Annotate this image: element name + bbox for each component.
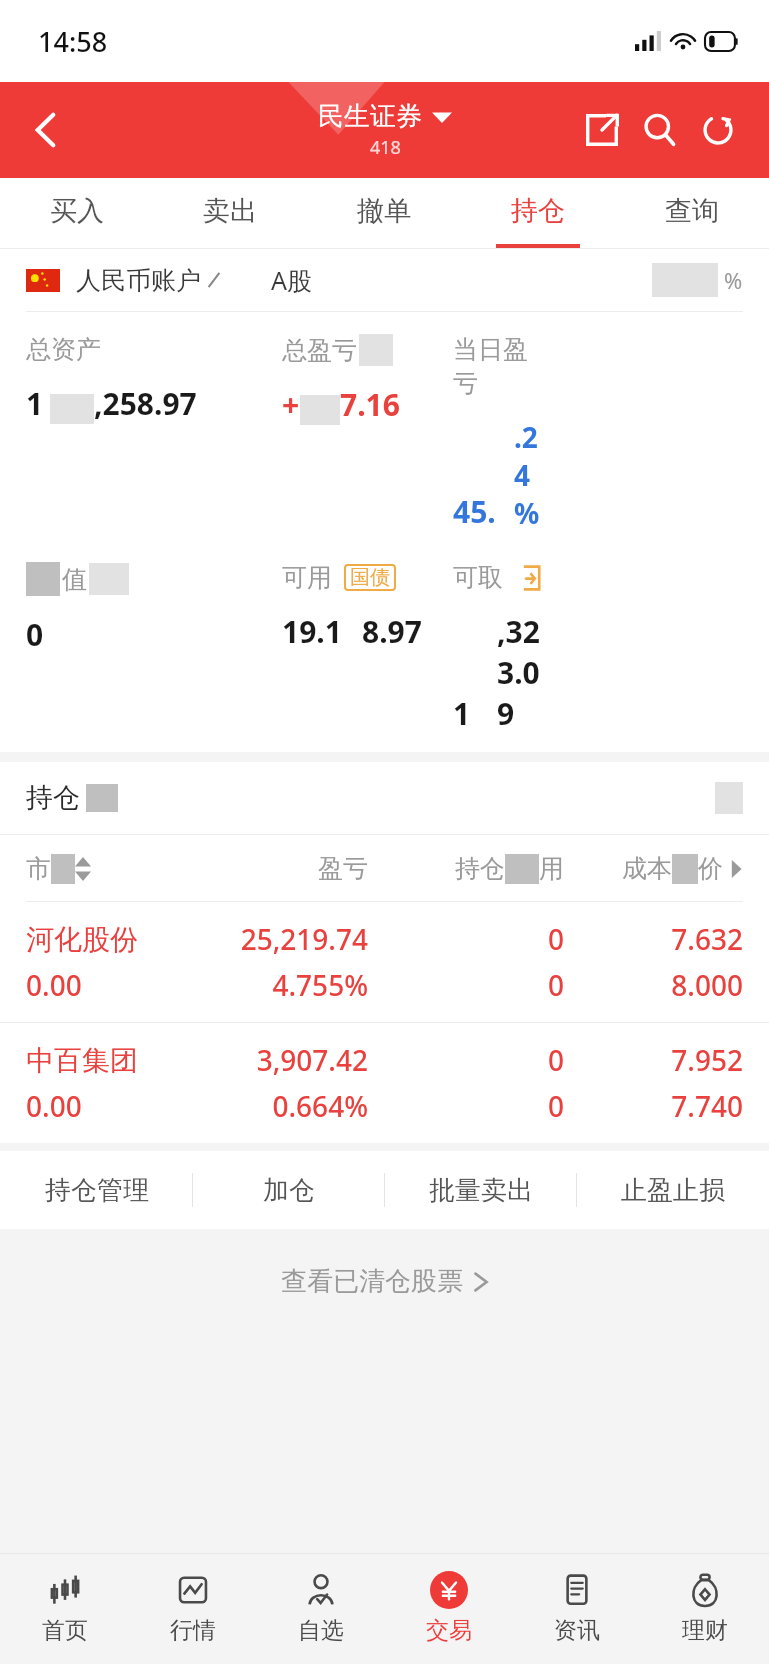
button[interactable]: Refresh xyxy=(689,101,747,159)
staticText: ,258.97 xyxy=(94,383,197,424)
staticText: % xyxy=(724,265,743,295)
button[interactable]: Transfer xyxy=(519,563,541,593)
button[interactable]: 查询 xyxy=(615,178,769,244)
button[interactable]: 止盈止损 xyxy=(577,1151,769,1229)
staticText: 首页 xyxy=(42,1616,88,1645)
staticText: 盈亏 xyxy=(214,853,368,884)
staticText: 用 xyxy=(539,853,564,884)
staticText: 4.755% xyxy=(214,966,368,1004)
staticText: 可取 xyxy=(453,562,503,593)
staticText: 河化股份 xyxy=(26,922,214,957)
button[interactable]: 查看已清仓股票 xyxy=(0,1235,769,1327)
staticText: 0 xyxy=(368,966,564,1004)
staticText: 7.740 xyxy=(564,1087,743,1125)
staticText: 加仓 xyxy=(263,1174,315,1207)
staticText: 查询 xyxy=(665,194,719,228)
button[interactable]: 河化股份 xyxy=(0,902,769,1022)
staticText: 国债 xyxy=(350,565,390,590)
staticText: 7.952 xyxy=(564,1041,743,1079)
staticText: 总盈亏 xyxy=(282,335,357,366)
button[interactable]: Share xyxy=(573,101,631,159)
staticText: 0.664% xyxy=(214,1087,368,1125)
button[interactable]: 撤单 xyxy=(307,178,461,244)
staticText: 理财 xyxy=(682,1616,728,1645)
button[interactable]: 卖出 xyxy=(153,178,307,244)
staticText: 买入 xyxy=(50,194,104,228)
staticText: 市 xyxy=(26,853,51,884)
staticText: 0 xyxy=(368,1087,564,1125)
button[interactable]: 国债 xyxy=(350,565,390,590)
staticText: 8.97 xyxy=(362,611,422,652)
button[interactable]: Back xyxy=(16,100,76,160)
button[interactable]: 中百集团 xyxy=(0,1023,769,1143)
button[interactable]: 持仓管理 xyxy=(0,1151,193,1229)
staticText: 价 xyxy=(698,853,723,884)
staticText: 成本 xyxy=(622,853,672,884)
staticText: 7.16 xyxy=(340,384,400,425)
staticText: A股 xyxy=(271,263,312,297)
staticText: 资讯 xyxy=(554,1616,600,1645)
staticText: 批量卖出 xyxy=(429,1174,533,1207)
staticText: 19.1 xyxy=(282,611,342,652)
staticText: 1 xyxy=(26,383,44,424)
staticText: 当日盈亏 xyxy=(453,334,541,400)
staticText: 民生证券 xyxy=(318,100,422,133)
staticText: 0 xyxy=(368,1041,564,1079)
button[interactable]: 资讯 xyxy=(513,1554,641,1658)
staticText: 持仓 xyxy=(455,853,505,884)
button[interactable]: 批量卖出 xyxy=(385,1151,577,1229)
button[interactable]: 买入 xyxy=(0,178,153,244)
staticText: 可用 xyxy=(282,562,332,593)
staticText: 止盈止损 xyxy=(621,1174,725,1207)
staticText: 418 xyxy=(370,135,401,160)
staticText: 撤单 xyxy=(357,194,411,228)
staticText: 持仓管理 xyxy=(45,1174,149,1207)
staticText: 值 xyxy=(62,564,87,595)
staticText: 持仓 xyxy=(511,194,565,228)
button[interactable]: 持仓 xyxy=(461,178,615,244)
staticText: 持仓 xyxy=(26,781,80,815)
button[interactable]: Search xyxy=(631,101,689,159)
staticText: 0 xyxy=(368,920,564,958)
staticText: 行情 xyxy=(170,1616,216,1645)
staticText: 3,907.42 xyxy=(214,1041,368,1079)
button[interactable]: 加仓 xyxy=(193,1151,385,1229)
staticText: 45. xyxy=(453,491,496,532)
button[interactable]: 首页 xyxy=(0,1554,129,1658)
staticText: 7.632 xyxy=(564,920,743,958)
staticText: 总资产 xyxy=(26,334,101,365)
button[interactable]: 交易 xyxy=(385,1554,513,1658)
staticText: 卖出 xyxy=(203,194,257,228)
staticText: 8.000 xyxy=(564,966,743,1004)
button[interactable]: 自选 xyxy=(257,1554,385,1658)
staticText: 查看已清仓股票 xyxy=(281,1265,463,1298)
staticText: .24% xyxy=(514,418,541,532)
button[interactable]: 理财 xyxy=(641,1554,769,1658)
staticText: 自选 xyxy=(298,1616,344,1645)
staticText: 中百集团 xyxy=(26,1043,214,1078)
staticText: 0.00 xyxy=(26,966,214,1004)
button[interactable]: 民生证券 xyxy=(318,100,452,160)
staticText: 0 xyxy=(26,614,44,655)
staticText: 人民币账户 xyxy=(76,265,201,296)
staticText: + xyxy=(282,384,300,425)
staticText: 0.00 xyxy=(26,1087,214,1125)
staticText: 14:58 xyxy=(38,23,108,60)
button[interactable]: 行情 xyxy=(129,1554,257,1658)
staticText: 1 xyxy=(453,693,471,734)
staticText: 交易 xyxy=(426,1616,472,1645)
staticText: 25,219.74 xyxy=(214,920,368,958)
staticText: ,323.09 xyxy=(497,611,541,734)
